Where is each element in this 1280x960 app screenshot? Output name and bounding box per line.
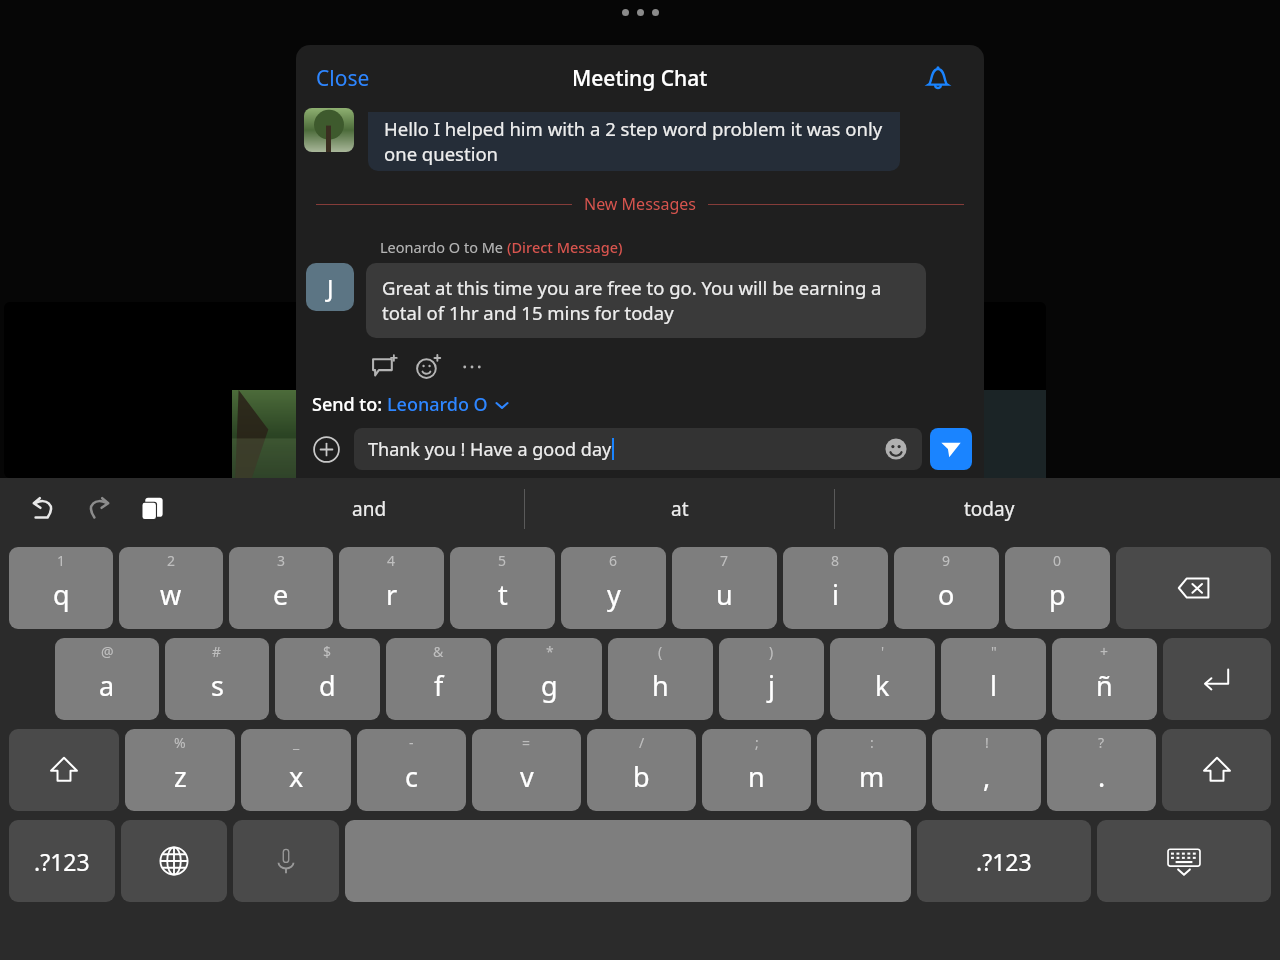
button[interactable]: 4 [339, 547, 444, 629]
button[interactable]: More options [450, 346, 494, 388]
button[interactable]: and [215, 478, 524, 540]
button[interactable]: ( [608, 638, 713, 720]
staticText: # [212, 642, 222, 661]
staticText: Send to: [312, 392, 387, 417]
button[interactable]: Shift [1162, 729, 1271, 811]
staticText: today [964, 496, 1015, 522]
staticText: , [983, 758, 991, 795]
staticText: z [174, 758, 187, 795]
button[interactable]: 2 [119, 547, 223, 629]
staticText: l [990, 667, 997, 704]
staticText: n [748, 758, 765, 795]
button[interactable]: Enter [1163, 638, 1271, 720]
button[interactable]: Hello I helped him with a 2 step word pr… [368, 112, 900, 171]
button[interactable]: Add reaction [406, 346, 450, 388]
button[interactable]: at [525, 478, 834, 540]
button[interactable]: Redo [76, 487, 120, 531]
button[interactable]: .?123 [9, 820, 115, 902]
staticText: Leonardo O to Me [380, 237, 507, 257]
button[interactable]: Close [304, 56, 382, 101]
button[interactable]: & [386, 638, 491, 720]
button[interactable]: ; [702, 729, 811, 811]
staticText: .?123 [976, 846, 1032, 877]
button[interactable]: .?123 [917, 820, 1091, 902]
staticText: Hello I helped him with a 2 step word pr… [384, 116, 884, 167]
staticText: = [522, 733, 531, 752]
staticText: o [938, 576, 955, 613]
staticText: & [433, 642, 444, 661]
staticText: j [768, 667, 775, 704]
staticText: ) [769, 642, 774, 661]
staticText: p [1049, 576, 1066, 613]
button[interactable]: - [357, 729, 466, 811]
staticText: / [639, 733, 645, 752]
staticText: w [160, 576, 182, 613]
button[interactable]: Shift [9, 729, 119, 811]
button[interactable]: Thank you ! Have a good day [354, 428, 922, 470]
staticText: @ [101, 642, 114, 661]
staticText: _ [293, 733, 300, 752]
button[interactable]: 6 [561, 547, 666, 629]
button[interactable]: ? [1047, 729, 1156, 811]
staticText: and [352, 496, 387, 522]
button[interactable]: + [1052, 638, 1157, 720]
button[interactable]: Backspace [1116, 547, 1271, 629]
button[interactable]: Change language [121, 820, 227, 902]
button[interactable]: Space [345, 820, 911, 902]
staticText: m [859, 758, 885, 795]
staticText: ? [1098, 733, 1105, 752]
button[interactable]: % [125, 729, 235, 811]
button[interactable]: Send [930, 428, 972, 470]
staticText: c [405, 758, 418, 795]
staticText: $ [323, 642, 332, 661]
button[interactable]: : [817, 729, 926, 811]
staticText: - [409, 733, 414, 752]
button[interactable]: @ [55, 638, 159, 720]
button[interactable]: ) [719, 638, 824, 720]
button[interactable]: 7 [672, 547, 777, 629]
staticText: ! [985, 733, 989, 752]
button[interactable]: Notifications [918, 59, 958, 99]
button[interactable]: Undo [22, 487, 66, 531]
staticText: h [652, 667, 669, 704]
staticText: at [671, 496, 689, 522]
button[interactable]: ' [830, 638, 935, 720]
button[interactable]: 3 [229, 547, 333, 629]
button[interactable]: * [497, 638, 602, 720]
staticText: 3 [277, 551, 286, 570]
staticText: Thank you ! Have a good day [368, 437, 612, 462]
button[interactable]: Add attachment [304, 427, 348, 471]
staticText: s [211, 667, 224, 704]
button[interactable]: 5 [450, 547, 555, 629]
button[interactable]: Hide keyboard [1097, 820, 1271, 902]
button[interactable]: Great at this time you are free to go. Y… [366, 263, 926, 338]
button[interactable]: Send to: [312, 392, 510, 417]
button[interactable]: 0 [1005, 547, 1110, 629]
button[interactable]: _ [241, 729, 351, 811]
button[interactable]: = [472, 729, 581, 811]
button[interactable]: $ [275, 638, 380, 720]
staticText: New Messages [584, 193, 696, 215]
staticText: d [319, 667, 336, 704]
staticText: r [386, 576, 398, 613]
staticText: 1 [57, 551, 66, 570]
button[interactable]: 9 [894, 547, 999, 629]
staticText: Leonardo O [387, 392, 488, 417]
staticText: . [1098, 758, 1106, 795]
button[interactable]: today [835, 478, 1144, 540]
button[interactable]: Clipboard [130, 487, 174, 531]
staticText: 7 [720, 551, 729, 570]
staticText: .?123 [34, 846, 90, 877]
button[interactable]: " [941, 638, 1046, 720]
button[interactable]: ! [932, 729, 1041, 811]
button[interactable]: / [587, 729, 696, 811]
button[interactable]: Reply [362, 346, 406, 388]
staticText: q [53, 576, 70, 613]
staticText: g [541, 667, 558, 704]
button[interactable]: Voice input [233, 820, 339, 902]
staticText: ( [658, 642, 663, 661]
button[interactable]: 1 [9, 547, 113, 629]
button[interactable]: # [165, 638, 269, 720]
button[interactable]: 8 [783, 547, 888, 629]
staticText: 8 [831, 551, 840, 570]
